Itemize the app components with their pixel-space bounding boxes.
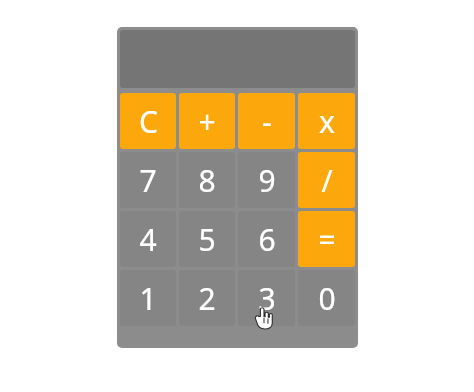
staticText: 9 [258, 160, 276, 201]
button[interactable]: 3 [238, 270, 295, 326]
staticText: 2 [198, 278, 216, 319]
button[interactable]: 8 [179, 152, 235, 208]
button[interactable]: x [298, 93, 355, 149]
staticText: x [319, 101, 335, 142]
button[interactable]: 7 [120, 152, 176, 208]
button[interactable]: 1 [120, 270, 176, 326]
staticText: 5 [198, 219, 216, 260]
button[interactable]: 0 [298, 270, 355, 326]
button[interactable]: + [179, 93, 235, 149]
staticText: 1 [139, 278, 157, 319]
button[interactable]: 9 [238, 152, 295, 208]
staticText: + [198, 101, 216, 142]
button[interactable]: 6 [238, 211, 295, 267]
button[interactable]: 4 [120, 211, 176, 267]
staticText: 3 [258, 278, 276, 319]
staticText: 4 [139, 219, 157, 260]
button[interactable]: - [238, 93, 295, 149]
button[interactable]: 2 [179, 270, 235, 326]
staticText: 8 [198, 160, 216, 201]
staticText: 6 [258, 219, 276, 260]
button[interactable]: / [298, 152, 355, 208]
staticText: = [318, 219, 336, 260]
staticText: 0 [318, 278, 336, 319]
staticText: 7 [139, 160, 157, 201]
button[interactable]: = [298, 211, 355, 267]
button[interactable]: C [120, 93, 176, 149]
staticText: / [321, 160, 333, 201]
button[interactable]: 5 [179, 211, 235, 267]
staticText: - [262, 101, 272, 142]
staticText: C [139, 101, 158, 142]
